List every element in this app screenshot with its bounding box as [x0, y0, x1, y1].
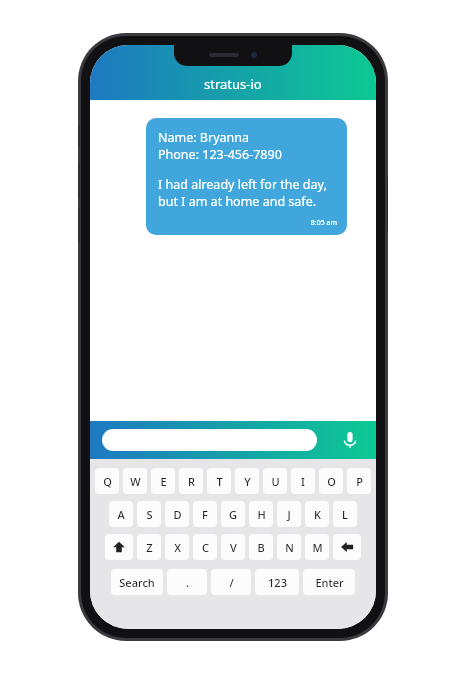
button[interactable]: C — [193, 534, 217, 560]
staticText: U — [271, 474, 280, 489]
button[interactable]: S — [137, 501, 161, 527]
button[interactable]: F — [193, 501, 217, 527]
button[interactable]: / — [211, 569, 251, 595]
button[interactable]: W — [123, 468, 147, 494]
staticText: . — [186, 575, 189, 590]
staticText: Search — [119, 575, 155, 590]
staticText: X — [174, 540, 181, 555]
staticText: A — [117, 507, 125, 522]
staticText: J — [287, 507, 291, 522]
staticText: S — [146, 507, 153, 522]
button[interactable]: K — [305, 501, 329, 527]
button[interactable]: A — [109, 501, 133, 527]
button[interactable]: P — [347, 468, 371, 494]
staticText: L — [342, 507, 348, 522]
staticText: B — [257, 540, 265, 555]
button[interactable]: R — [179, 468, 203, 494]
staticText: / — [229, 575, 234, 590]
staticText: Q — [103, 474, 112, 489]
staticText: Name: Bryanna Phone: 123-456-7890 — [158, 129, 282, 163]
button[interactable]: 123 — [255, 569, 299, 595]
staticText: F — [202, 507, 208, 522]
button[interactable] — [105, 534, 133, 560]
button[interactable]: E — [151, 468, 175, 494]
staticText: Enter — [315, 575, 344, 590]
button[interactable]: M — [305, 534, 329, 560]
button[interactable]: L — [333, 501, 357, 527]
button[interactable]: J — [277, 501, 301, 527]
button[interactable]: U — [263, 468, 287, 494]
button[interactable]: G — [221, 501, 245, 527]
staticText: V — [230, 540, 237, 555]
button[interactable]: Q — [95, 468, 119, 494]
staticText: Y — [244, 474, 251, 489]
button[interactable]: Search — [111, 569, 163, 595]
staticText: K — [314, 507, 321, 522]
button[interactable]: H — [249, 501, 273, 527]
button[interactable]: Enter — [303, 569, 355, 595]
staticText: O — [327, 474, 336, 489]
staticText: E — [160, 474, 167, 489]
staticText: 123 — [268, 575, 287, 590]
staticText: R — [188, 474, 195, 489]
staticText: Z — [146, 540, 153, 555]
staticText: 8:05 am — [158, 218, 337, 228]
button[interactable]: I — [291, 468, 315, 494]
staticText: G — [229, 507, 237, 522]
button[interactable]: D — [165, 501, 189, 527]
button[interactable]: Voice input — [337, 427, 363, 453]
button[interactable] — [333, 534, 361, 560]
button[interactable]: O — [319, 468, 343, 494]
button[interactable]: Z — [137, 534, 161, 560]
button[interactable]: B — [249, 534, 273, 560]
staticText: C — [202, 540, 209, 555]
button[interactable]: . — [167, 569, 207, 595]
staticText: I had already left for the day, but I am… — [158, 176, 337, 210]
button[interactable]: X — [165, 534, 189, 560]
staticText: H — [257, 507, 266, 522]
staticText: N — [285, 540, 294, 555]
staticText: stratus-io — [204, 75, 262, 93]
button[interactable]: T — [207, 468, 231, 494]
staticText: M — [312, 540, 323, 555]
button[interactable]: Name: Bryanna Phone: 123-456-7890 — [146, 118, 347, 235]
button[interactable] — [102, 429, 317, 451]
staticText: P — [356, 474, 363, 489]
button[interactable]: V — [221, 534, 245, 560]
staticText: I — [301, 474, 305, 489]
staticText: T — [216, 474, 223, 489]
staticText: D — [173, 507, 182, 522]
button[interactable]: Y — [235, 468, 259, 494]
staticText: W — [130, 474, 141, 489]
button[interactable]: N — [277, 534, 301, 560]
